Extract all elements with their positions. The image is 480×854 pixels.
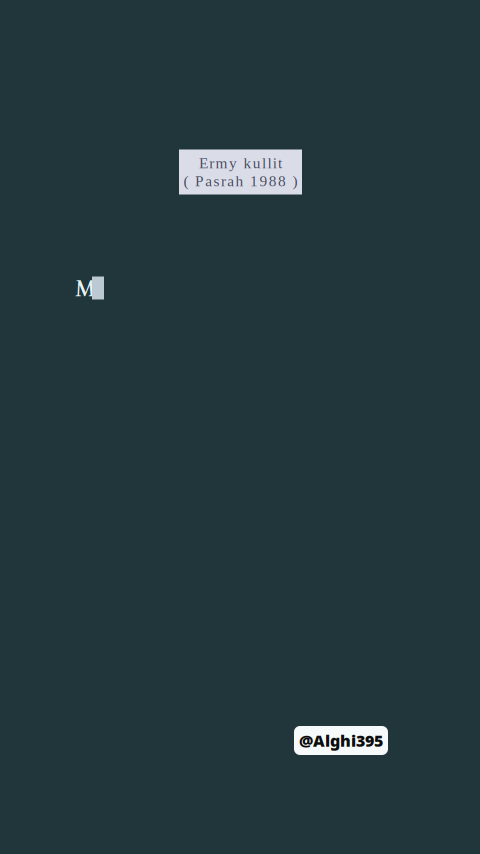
staticText: M xyxy=(75,275,95,302)
staticText: Ermy kullit xyxy=(199,154,282,171)
staticText: ( Pasrah 1988 ) xyxy=(183,172,298,189)
staticText: @Alghi395 xyxy=(299,730,383,751)
button[interactable]: @Alghi395 xyxy=(294,726,388,755)
